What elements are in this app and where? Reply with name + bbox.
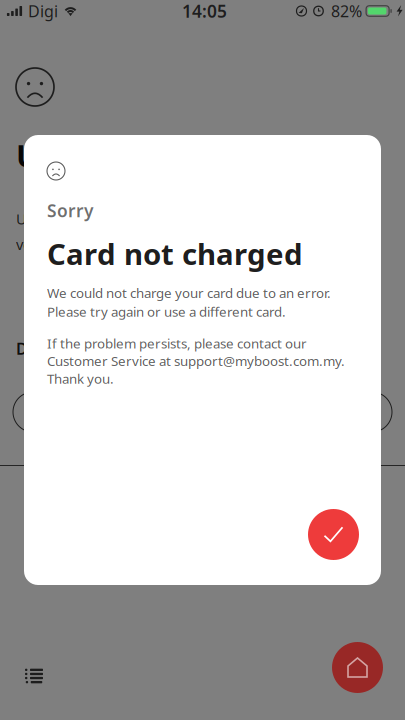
button[interactable]: Home xyxy=(332,642,383,693)
staticText: 14:05 xyxy=(182,0,227,22)
staticText: We could not charge your card due to an … xyxy=(47,284,331,320)
staticText: Unsuccessful xyxy=(16,135,215,176)
button[interactable]: Transactions xyxy=(16,659,52,693)
staticText: Details xyxy=(16,338,70,359)
staticText: Digi xyxy=(28,0,58,22)
staticText: If the problem persists, please contact … xyxy=(47,334,345,387)
staticText: 82% xyxy=(331,0,362,22)
staticText: Card not charged xyxy=(47,234,303,273)
staticText: Sorry xyxy=(47,199,93,222)
staticText: Unfortunately we could not verify this c… xyxy=(16,209,204,254)
button[interactable]: Confirm xyxy=(308,509,359,560)
